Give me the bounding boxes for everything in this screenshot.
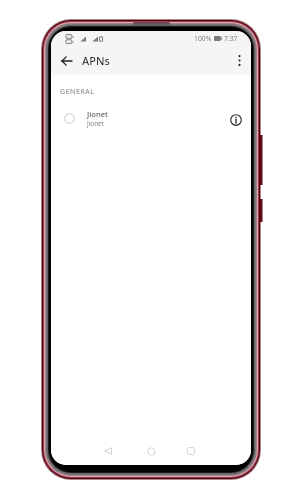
staticText: GENERAL	[60, 87, 95, 97]
button[interactable]: Recents	[177, 437, 205, 465]
staticText: APNs	[82, 53, 110, 68]
staticText: 100%	[194, 34, 212, 43]
button[interactable]: Back	[94, 437, 122, 465]
button[interactable]: APN details	[224, 108, 248, 132]
button[interactable]: Jionet	[51, 103, 251, 133]
staticText: 7:37	[224, 34, 238, 43]
button[interactable]: Home	[137, 437, 165, 465]
button[interactable]: Back	[53, 46, 79, 75]
button[interactable]: More options	[228, 46, 250, 75]
staticText: Jionet	[87, 109, 108, 119]
staticText: Jionet	[87, 119, 104, 128]
